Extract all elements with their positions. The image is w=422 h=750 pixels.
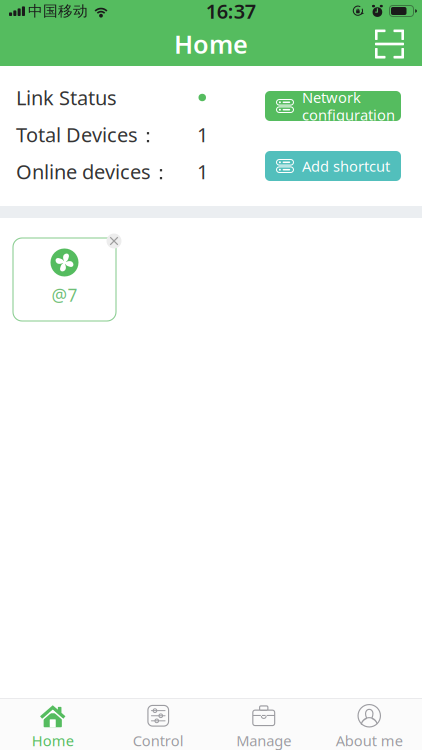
staticText: configuration bbox=[302, 105, 395, 124]
staticText: 中国移动 bbox=[28, 2, 88, 20]
staticText: Home bbox=[174, 27, 248, 61]
button[interactable]: About me bbox=[316, 695, 422, 750]
button[interactable]: Add shortcut bbox=[265, 151, 401, 181]
button[interactable]: Network bbox=[265, 91, 401, 121]
button[interactable]: Remove device bbox=[104, 231, 124, 251]
staticText: Total Devices： bbox=[16, 121, 158, 148]
button[interactable]: Home bbox=[0, 695, 105, 750]
staticText: Add shortcut bbox=[302, 156, 390, 176]
staticText: 1 bbox=[197, 158, 208, 185]
staticText: Online devices： bbox=[16, 158, 171, 185]
button[interactable]: Scan QR code bbox=[364, 22, 415, 65]
staticText: @7 bbox=[51, 283, 77, 306]
staticText: Control bbox=[133, 731, 184, 750]
staticText: Link Status bbox=[16, 84, 117, 111]
button[interactable]: Manage bbox=[211, 695, 316, 750]
staticText: 1 bbox=[197, 121, 208, 148]
staticText: Network bbox=[302, 87, 361, 107]
staticText: 16:37 bbox=[206, 0, 256, 24]
staticText: About me bbox=[336, 731, 403, 750]
staticText: Manage bbox=[236, 731, 291, 750]
staticText: Home bbox=[32, 731, 74, 750]
button[interactable]: Control bbox=[105, 695, 211, 750]
